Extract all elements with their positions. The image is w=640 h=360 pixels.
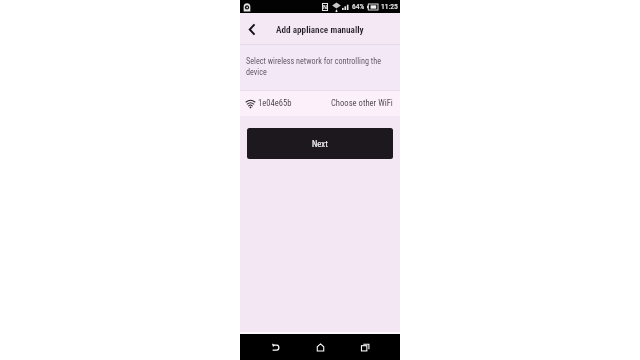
- staticText: Next: [312, 139, 328, 149]
- button[interactable]: 1e04e65b: [240, 90, 400, 116]
- button[interactable]: Recent apps: [343, 334, 388, 360]
- button[interactable]: Back: [253, 334, 298, 360]
- staticText: Choose other WiFi: [331, 98, 393, 108]
- staticText: 11:25: [381, 2, 398, 11]
- staticText: 64%: [352, 2, 365, 11]
- button[interactable]: Back: [242, 19, 262, 39]
- staticText: Add appliance manually: [276, 24, 364, 35]
- staticText: Select wireless network for controlling …: [246, 55, 397, 77]
- button[interactable]: Home: [298, 334, 343, 360]
- button[interactable]: Next: [247, 128, 393, 159]
- staticText: 1e04e65b: [258, 98, 292, 108]
